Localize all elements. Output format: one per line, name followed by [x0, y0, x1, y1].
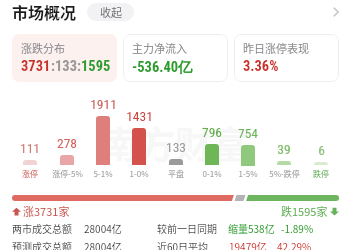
staticText: 跌1595家: [281, 203, 328, 219]
staticText: 1-0%: [129, 168, 149, 180]
staticText: 133: [166, 139, 186, 155]
button[interactable]: 涨跌分布: [12, 34, 117, 82]
staticText: 0-1%: [202, 168, 222, 180]
staticText: 涨停-5%: [52, 168, 83, 180]
staticText: 133: [55, 58, 77, 75]
staticText: 收起: [100, 4, 122, 20]
staticText: 39: [277, 141, 291, 157]
staticText: 主力净流入: [132, 40, 187, 56]
button[interactable]: 主力净流入: [123, 34, 228, 82]
staticText: 278: [57, 135, 77, 151]
staticText: 市场概况: [12, 0, 77, 23]
staticText: 1431: [126, 108, 153, 124]
staticText: 涨3731家: [23, 203, 70, 219]
staticText: 预测成交总额: [12, 239, 72, 250]
staticText: 缩量538亿: [228, 221, 275, 235]
staticText: 3731: [21, 58, 51, 75]
staticText: -536.40亿: [132, 58, 193, 76]
staticText: 111: [20, 140, 40, 156]
staticText: 796: [202, 124, 222, 140]
staticText: 两市成交总额: [12, 221, 72, 235]
staticText: 较前一日同期: [157, 221, 217, 235]
staticText: 754: [238, 125, 258, 141]
staticText: 涨跌分布: [21, 40, 65, 56]
button[interactable]: 昨日涨停表现: [234, 34, 339, 82]
staticText: 昨日涨停表现: [243, 40, 309, 56]
staticText: 近60日平均: [157, 239, 209, 250]
staticText: -1.89%: [281, 221, 314, 235]
staticText: 1-5%: [238, 168, 258, 180]
staticText: 平盘: [168, 168, 184, 180]
staticText: 3.36%: [243, 58, 279, 75]
staticText: 5-1%: [93, 168, 113, 180]
staticText: 6: [318, 142, 325, 158]
staticText: 28004亿: [84, 239, 122, 250]
staticText: 跌停: [313, 168, 329, 180]
staticText: 28004亿: [84, 221, 122, 235]
staticText: :: [51, 58, 55, 75]
staticText: 42.29%: [277, 239, 312, 250]
staticText: 5%-跌停: [269, 168, 300, 180]
button[interactable]: 收起: [87, 3, 134, 21]
staticText: :: [77, 58, 81, 75]
staticText: 1911: [90, 96, 117, 112]
staticText: 南方财富: [101, 116, 249, 170]
staticText: 19479亿: [229, 239, 267, 250]
button[interactable]: 展开: [326, 2, 346, 22]
staticText: 1595: [81, 58, 111, 75]
staticText: 涨停: [22, 168, 38, 180]
